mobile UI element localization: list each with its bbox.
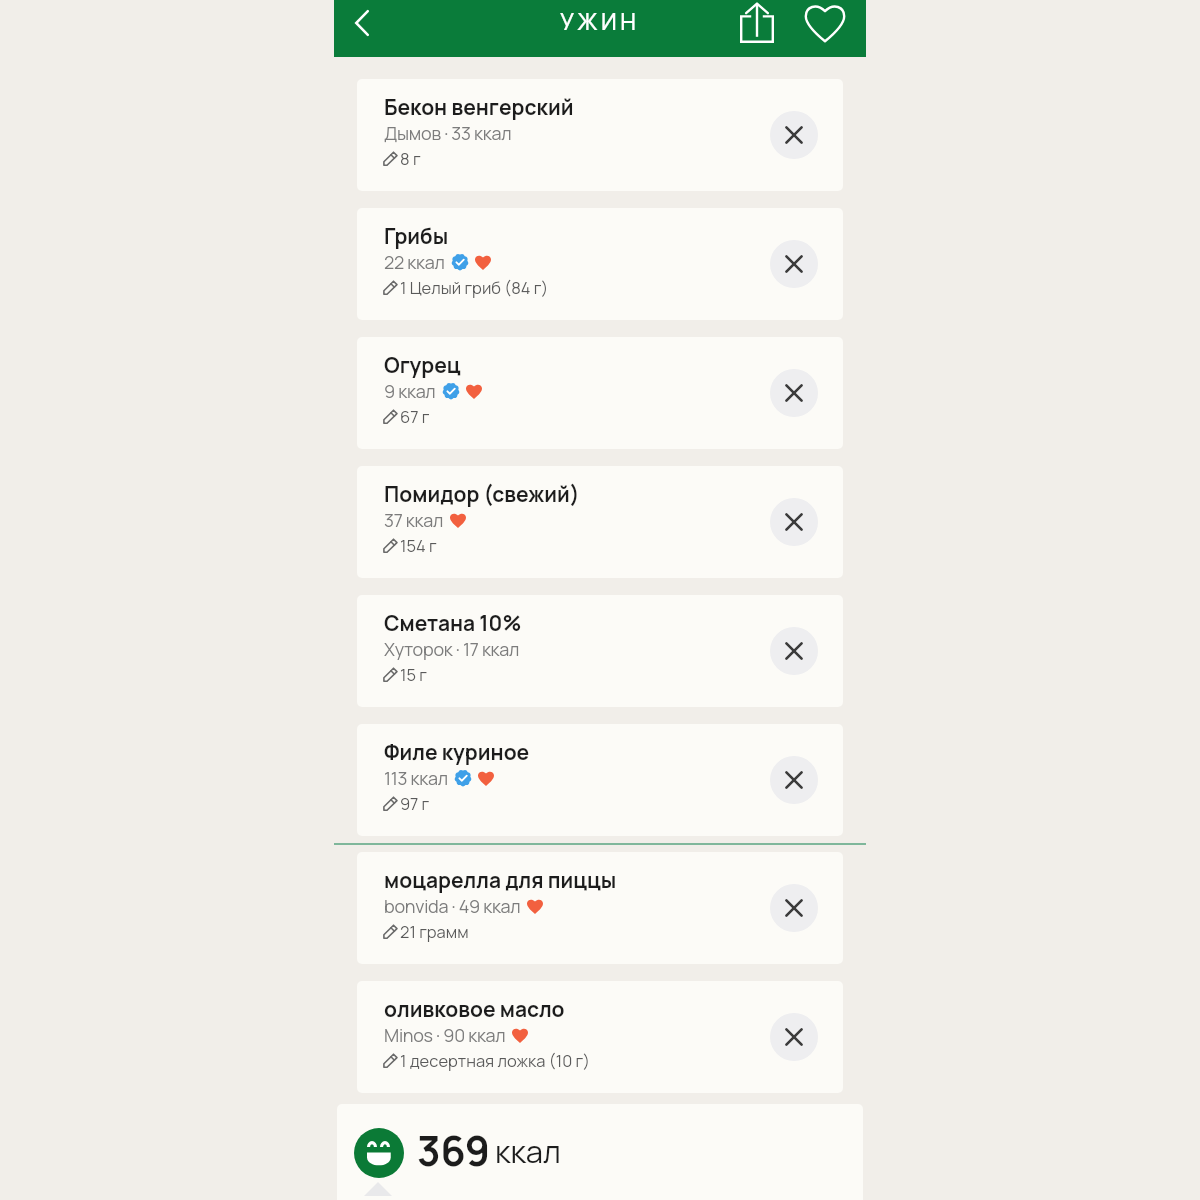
button[interactable]: Remove (770, 369, 818, 417)
button[interactable]: Филе куриное (357, 724, 843, 836)
staticText: 113 ккал (384, 766, 448, 790)
staticText: Хуторок · 17 ккал (384, 637, 520, 661)
staticText: Грибы (384, 221, 449, 250)
button[interactable]: оливковое масло (357, 981, 843, 1093)
button[interactable]: Помидор (свежий) (357, 466, 843, 578)
button[interactable]: Бекон венгерский (357, 79, 843, 191)
staticText: 37 ккал (384, 508, 444, 532)
staticText: 97 г (400, 792, 430, 815)
button[interactable]: Remove (770, 1013, 818, 1061)
staticText: 1 Целый гриб (84 г) (400, 276, 549, 299)
button[interactable]: Сметана 10% (357, 595, 843, 707)
staticText: 154 г (400, 534, 437, 557)
staticText: 8 г (400, 147, 421, 170)
staticText: моцарелла для пиццы (384, 865, 617, 894)
staticText: 369 (417, 1123, 490, 1178)
staticText: Филе куриное (384, 737, 530, 766)
staticText: УЖИН (560, 6, 640, 37)
staticText: bonvida · 49 ккал (384, 894, 521, 918)
button[interactable]: Share (730, 0, 784, 45)
button[interactable]: Грибы (357, 208, 843, 320)
button[interactable]: Remove (770, 240, 818, 288)
button[interactable]: Remove (770, 111, 818, 159)
staticText: 1 десертная ложка (10 г) (400, 1049, 590, 1072)
staticText: Дымов · 33 ккал (384, 121, 512, 145)
staticText: 21 грамм (400, 920, 469, 943)
staticText: Сметана 10% (384, 608, 522, 637)
staticText: 15 г (400, 663, 427, 686)
button[interactable]: Remove (770, 884, 818, 932)
button[interactable]: Favorite (801, 0, 849, 45)
button[interactable]: Огурец (357, 337, 843, 449)
staticText: Помидор (свежий) (384, 479, 580, 508)
staticText: Minos · 90 ккал (384, 1023, 506, 1047)
button[interactable]: Remove (770, 627, 818, 675)
staticText: Огурец (384, 350, 461, 379)
staticText: 22 ккал (384, 250, 445, 274)
button[interactable]: Back (339, 0, 385, 45)
staticText: оливковое масло (384, 994, 565, 1023)
button[interactable]: Remove (770, 756, 818, 804)
staticText: 9 ккал (384, 379, 436, 403)
button[interactable]: моцарелла для пиццы (357, 852, 843, 964)
staticText: Бекон венгерский (384, 92, 574, 121)
staticText: ккал (495, 1130, 561, 1172)
staticText: 67 г (400, 405, 430, 428)
button[interactable]: Remove (770, 498, 818, 546)
